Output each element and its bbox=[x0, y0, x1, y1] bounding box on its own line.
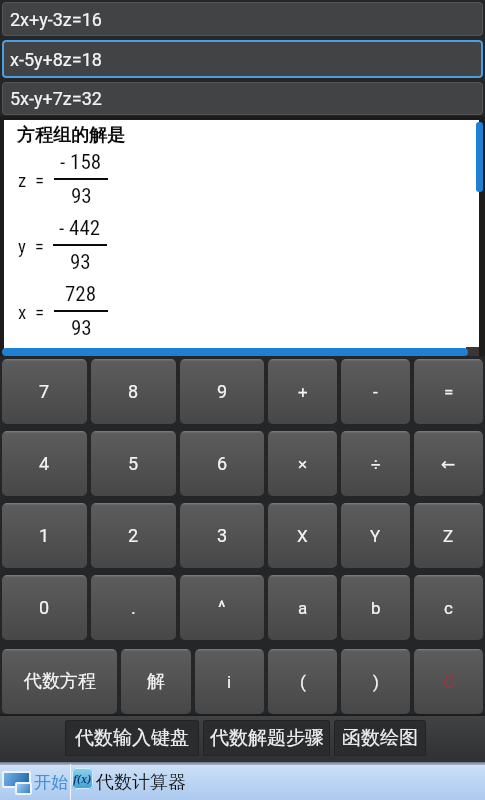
button[interactable]: . bbox=[91, 575, 176, 640]
staticText: 代数方程 bbox=[24, 670, 96, 693]
button[interactable]: C bbox=[414, 649, 483, 714]
staticText: 3 bbox=[217, 525, 228, 546]
staticText: 解 bbox=[147, 670, 165, 693]
button[interactable]: 2 bbox=[91, 503, 176, 568]
staticText: - 158 bbox=[60, 150, 102, 175]
staticText: b bbox=[371, 598, 381, 618]
staticText: = bbox=[444, 382, 454, 402]
button[interactable]: ÷ bbox=[341, 431, 410, 496]
button[interactable]: i bbox=[195, 649, 264, 714]
staticText: x-5y+8z=18 bbox=[10, 49, 102, 70]
staticText: ) bbox=[373, 672, 379, 692]
staticText: c bbox=[444, 598, 453, 618]
staticText: 93 bbox=[71, 184, 92, 209]
staticText: - 442 bbox=[59, 216, 101, 241]
staticText: X bbox=[297, 526, 308, 546]
staticText: Y bbox=[370, 526, 381, 546]
button[interactable]: ← bbox=[414, 431, 483, 496]
button[interactable]: 0 bbox=[2, 575, 87, 640]
button[interactable]: Z bbox=[414, 503, 483, 568]
staticText: 方程组的解是 bbox=[17, 124, 125, 147]
staticText: 93 bbox=[71, 316, 92, 341]
button[interactable]: ) bbox=[341, 649, 410, 714]
staticText: 93 bbox=[70, 250, 91, 275]
button[interactable]: 5x-y+7z=32 bbox=[2, 82, 483, 115]
button[interactable]: 6 bbox=[180, 431, 264, 496]
staticText: ← bbox=[441, 454, 456, 474]
button[interactable]: 代数计算器 bbox=[96, 763, 186, 800]
staticText: ( bbox=[300, 672, 306, 692]
button[interactable]: b bbox=[341, 575, 410, 640]
staticText: 1 bbox=[39, 525, 50, 546]
button[interactable]: 开始 bbox=[34, 763, 68, 800]
button[interactable]: ( bbox=[268, 649, 337, 714]
staticText: - bbox=[373, 382, 378, 402]
button[interactable]: Y bbox=[341, 503, 410, 568]
staticText: a bbox=[298, 598, 308, 618]
staticText: Z bbox=[443, 526, 454, 546]
staticText: 函数绘图 bbox=[342, 726, 418, 750]
staticText: 7 bbox=[39, 381, 50, 402]
staticText: f(x) bbox=[73, 772, 92, 786]
button[interactable]: ^ bbox=[180, 575, 264, 640]
staticText: 0 bbox=[39, 597, 50, 618]
button[interactable]: 函数绘图 bbox=[334, 720, 426, 756]
staticText: z = bbox=[18, 169, 45, 191]
button[interactable]: 解 bbox=[121, 649, 191, 714]
button[interactable]: 代数输入键盘 bbox=[65, 720, 199, 756]
staticText: C bbox=[443, 671, 455, 692]
button[interactable]: X bbox=[268, 503, 337, 568]
staticText: + bbox=[298, 382, 308, 402]
staticText: 9 bbox=[217, 381, 228, 402]
staticText: 2x+y-3z=16 bbox=[10, 9, 102, 30]
staticText: 8 bbox=[128, 381, 139, 402]
button[interactable]: x-5y+8z=18 bbox=[2, 40, 483, 78]
button[interactable]: + bbox=[268, 359, 337, 424]
staticText: 6 bbox=[217, 453, 228, 474]
button[interactable]: - bbox=[341, 359, 410, 424]
staticText: 5 bbox=[128, 453, 139, 474]
button[interactable]: a bbox=[268, 575, 337, 640]
button[interactable]: 4 bbox=[2, 431, 87, 496]
button[interactable]: 2x+y-3z=16 bbox=[2, 2, 483, 36]
button[interactable]: 7 bbox=[2, 359, 87, 424]
staticText: 4 bbox=[39, 453, 50, 474]
button[interactable]: 9 bbox=[180, 359, 264, 424]
staticText: 728 bbox=[65, 282, 97, 307]
staticText: . bbox=[131, 597, 136, 618]
staticText: x = bbox=[18, 301, 45, 323]
staticText: ÷ bbox=[371, 454, 381, 474]
staticText: × bbox=[298, 454, 308, 474]
staticText: 代数解题步骤 bbox=[210, 726, 324, 750]
button[interactable]: 代数方程 bbox=[2, 649, 117, 714]
button[interactable]: × bbox=[268, 431, 337, 496]
staticText: ^ bbox=[218, 597, 226, 618]
staticText: 代数计算器 bbox=[96, 771, 186, 794]
button[interactable]: c bbox=[414, 575, 483, 640]
staticText: 开始 bbox=[34, 772, 68, 793]
button[interactable]: 代数解题步骤 bbox=[203, 720, 330, 756]
staticText: i bbox=[227, 672, 232, 692]
staticText: y = bbox=[18, 235, 44, 257]
button[interactable]: 3 bbox=[180, 503, 264, 568]
button[interactable]: 1 bbox=[2, 503, 87, 568]
button[interactable]: = bbox=[414, 359, 483, 424]
button[interactable]: 5 bbox=[91, 431, 176, 496]
button[interactable]: 8 bbox=[91, 359, 176, 424]
staticText: 5x-y+7z=32 bbox=[10, 88, 102, 109]
staticText: 2 bbox=[128, 525, 139, 546]
staticText: 代数输入键盘 bbox=[75, 726, 189, 750]
